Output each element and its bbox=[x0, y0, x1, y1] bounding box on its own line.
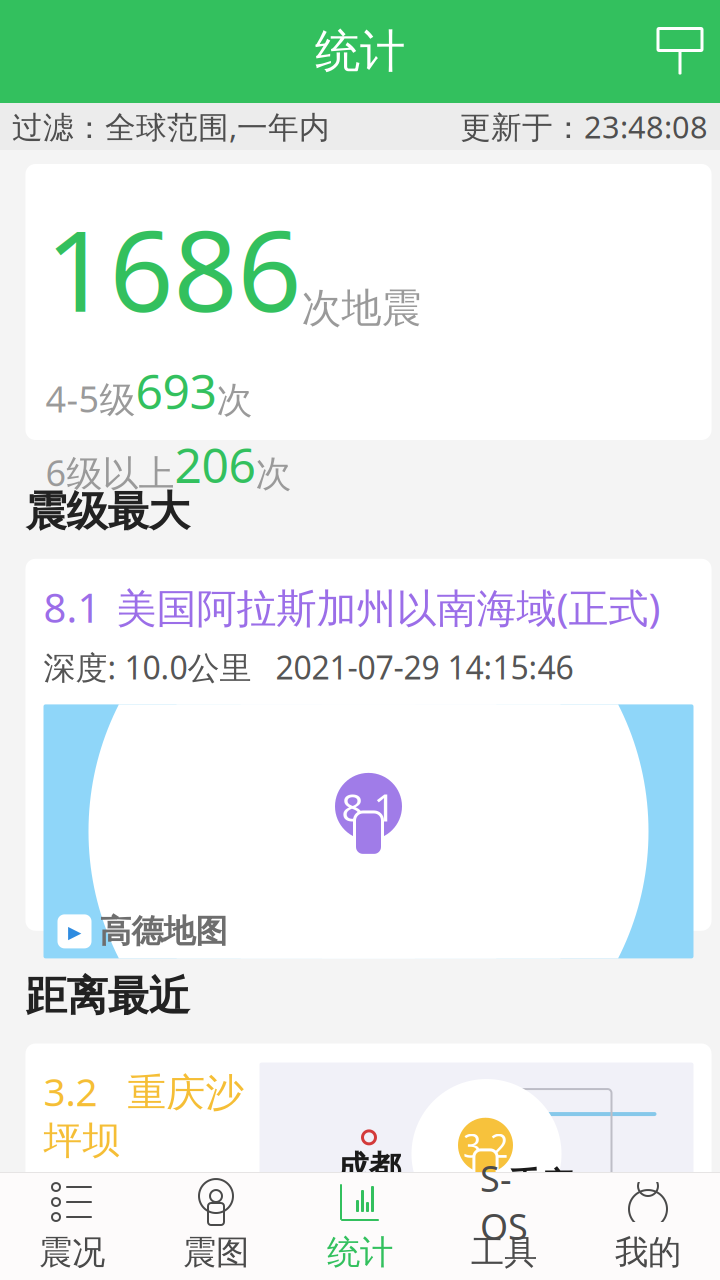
staticText: 成都 bbox=[337, 1148, 401, 1187]
button[interactable]: 震况 bbox=[0, 1173, 144, 1280]
staticText: 区(正式) bbox=[43, 1168, 184, 1220]
button[interactable]: 3.2 重庆沙坪坝 bbox=[25, 1043, 711, 1205]
staticText: 我的 bbox=[615, 1232, 681, 1273]
staticText: 693 bbox=[135, 359, 216, 422]
staticText: 震级最大 bbox=[25, 486, 189, 537]
staticText: 高德地图 bbox=[99, 912, 227, 951]
staticText: 3.2 重庆沙坪坝 bbox=[43, 1065, 244, 1164]
staticText: ▸ bbox=[68, 916, 81, 946]
staticText: 距离最近 bbox=[25, 971, 189, 1022]
staticText: 深度: 10.0公里 bbox=[43, 1228, 259, 1272]
staticText: 8.1 bbox=[341, 781, 395, 832]
button[interactable]: 震图 bbox=[144, 1173, 288, 1280]
staticText: 过滤：全球范围,一年内 bbox=[12, 106, 330, 147]
staticText: 6级以上 bbox=[45, 448, 174, 496]
staticText: SOS bbox=[480, 1154, 528, 1250]
staticText: 1686 bbox=[45, 194, 301, 343]
staticText: 统计 bbox=[315, 24, 405, 79]
staticText: 更新于：23:48:08 bbox=[460, 106, 708, 147]
staticText: 美国阿拉斯加州以南海域(正式) bbox=[116, 581, 660, 634]
staticText: 震图 bbox=[183, 1232, 249, 1273]
button[interactable]: 筛选 bbox=[640, 11, 720, 91]
staticText: 深度: 10.0公里 2021-07-29 14:15:46 bbox=[43, 646, 573, 688]
staticText: 3.2 bbox=[463, 1124, 508, 1166]
staticText: 工具 bbox=[471, 1232, 537, 1273]
button[interactable]: 我的 bbox=[576, 1173, 720, 1280]
staticText: 8.1 bbox=[43, 581, 100, 634]
staticText: 统计 bbox=[327, 1232, 393, 1273]
staticText: 重庆 bbox=[508, 1164, 572, 1204]
button[interactable]: 统计 bbox=[288, 1173, 432, 1280]
staticText: 206 bbox=[174, 432, 255, 496]
button[interactable]: SOS bbox=[432, 1173, 576, 1280]
button[interactable]: 8.1 bbox=[25, 559, 711, 931]
staticText: 次 bbox=[255, 452, 291, 496]
staticText: 次 bbox=[216, 378, 252, 422]
staticText: 震况 bbox=[39, 1232, 105, 1273]
staticText: 次地震 bbox=[301, 284, 421, 333]
staticText: 4-5级 bbox=[45, 375, 135, 422]
